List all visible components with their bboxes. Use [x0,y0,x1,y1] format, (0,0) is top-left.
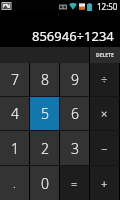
staticText: × [101,106,108,121]
staticText: 12:50 [97,1,118,12]
button[interactable]: 3 [60,131,89,165]
staticText: = [71,176,78,191]
staticText: 856946÷1234 [32,27,114,45]
staticText: 5 [41,104,49,123]
button[interactable]: 8 [30,63,59,96]
staticText: . [13,176,16,191]
staticText: DELETE [96,52,114,59]
staticText: 8 [41,70,49,89]
button[interactable]: 6 [60,97,89,130]
button[interactable]: 2 [30,131,59,165]
button[interactable]: + [90,166,119,200]
button[interactable]: 0 [30,166,59,200]
button[interactable]: 1 [0,131,29,165]
staticText: 3 [71,139,79,158]
other: Screenshot captured [2,2,11,10]
button[interactable]: × [90,97,119,130]
staticText: ÷ [101,72,108,87]
staticText: 6 [71,104,79,123]
staticText: 4 [11,104,19,123]
button[interactable]: 4 [0,97,29,130]
button[interactable]: 5 [30,97,59,130]
button[interactable]: − [90,131,119,165]
staticText: 1 [11,139,19,158]
staticText: − [101,141,108,156]
staticText: 0 [41,174,49,193]
button[interactable]: DELETE [90,47,120,63]
button[interactable]: = [60,166,89,200]
button[interactable]: 9 [60,63,89,96]
staticText: 9 [71,70,79,89]
staticText: + [101,176,108,191]
staticText: 2 [41,139,49,158]
button[interactable]: 7 [0,63,29,96]
button[interactable]: . [0,166,29,200]
staticText: 7 [11,70,19,89]
button[interactable]: ÷ [90,63,119,96]
